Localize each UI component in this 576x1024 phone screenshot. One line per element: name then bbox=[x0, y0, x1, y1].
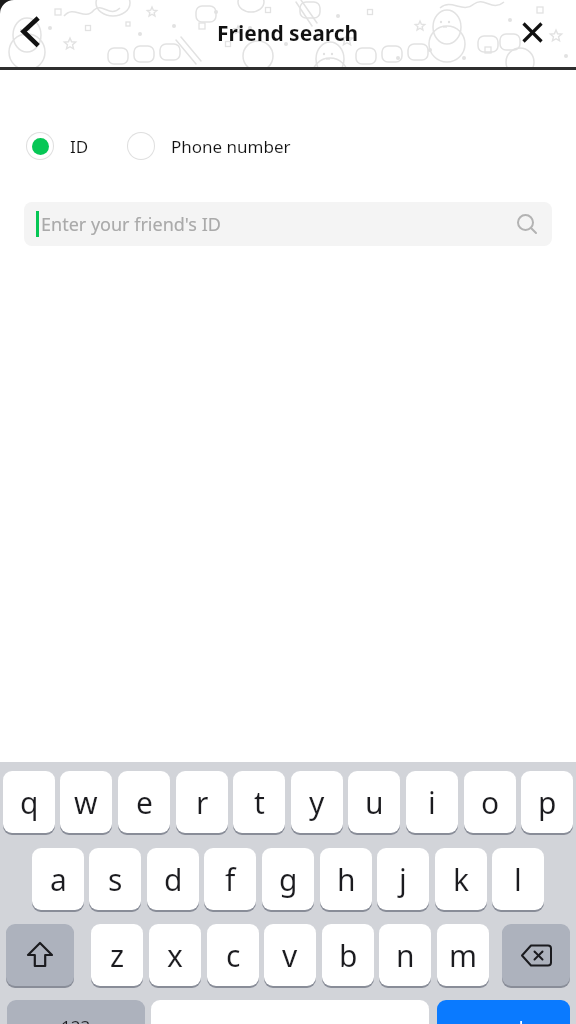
button[interactable]: Phone number bbox=[127, 132, 291, 160]
staticText: Phone number bbox=[171, 135, 291, 158]
staticText: f bbox=[225, 859, 236, 900]
button[interactable]: i bbox=[406, 771, 458, 833]
button[interactable]: search bbox=[437, 1000, 570, 1024]
staticText: t bbox=[254, 782, 265, 823]
button[interactable] bbox=[514, 14, 550, 50]
staticText: 123 bbox=[61, 1015, 91, 1024]
button[interactable]: o bbox=[464, 771, 516, 833]
staticText: d bbox=[164, 859, 183, 900]
button[interactable]: u bbox=[348, 771, 400, 833]
staticText: l bbox=[514, 859, 522, 900]
button[interactable]: v bbox=[264, 924, 316, 986]
button[interactable]: m bbox=[437, 924, 489, 986]
button[interactable]: j bbox=[377, 848, 429, 910]
button[interactable]: x bbox=[149, 924, 201, 986]
staticText: r bbox=[196, 782, 209, 823]
button[interactable]: d bbox=[147, 848, 199, 910]
staticText: x bbox=[167, 935, 183, 976]
button[interactable]: h bbox=[320, 848, 372, 910]
button[interactable]: p bbox=[521, 771, 573, 833]
staticText: s bbox=[108, 859, 123, 900]
staticText: m bbox=[449, 935, 478, 976]
button[interactable]: w bbox=[60, 771, 112, 833]
staticText: q bbox=[20, 782, 39, 823]
staticText: z bbox=[110, 935, 125, 976]
staticText: w bbox=[74, 782, 98, 823]
staticText: k bbox=[453, 859, 470, 900]
button[interactable]: g bbox=[262, 848, 314, 910]
button[interactable]: ID bbox=[26, 132, 89, 160]
staticText: h bbox=[337, 859, 356, 900]
staticText: Enter your friend's ID bbox=[41, 212, 221, 237]
staticText: v bbox=[282, 935, 298, 976]
staticText: g bbox=[279, 859, 298, 900]
button[interactable]: y bbox=[291, 771, 343, 833]
button[interactable]: t bbox=[233, 771, 285, 833]
staticText: p bbox=[538, 782, 557, 823]
staticText: ID bbox=[70, 135, 89, 158]
button[interactable] bbox=[10, 14, 50, 50]
button[interactable]: 123 bbox=[7, 1000, 145, 1024]
button[interactable]: z bbox=[91, 924, 143, 986]
button[interactable] bbox=[6, 924, 74, 986]
staticText: o bbox=[481, 782, 500, 823]
staticText: a bbox=[50, 859, 67, 900]
button[interactable]: l bbox=[492, 848, 544, 910]
button[interactable]: a bbox=[32, 848, 84, 910]
button[interactable]: s bbox=[89, 848, 141, 910]
staticText: y bbox=[309, 782, 325, 823]
button[interactable] bbox=[502, 924, 570, 986]
button[interactable]: Enter your friend's ID bbox=[24, 202, 552, 246]
button[interactable]: f bbox=[204, 848, 256, 910]
staticText: u bbox=[365, 782, 384, 823]
button[interactable]: q bbox=[3, 771, 55, 833]
staticText: e bbox=[136, 782, 153, 823]
button[interactable]: b bbox=[322, 924, 374, 986]
staticText: search bbox=[477, 1015, 530, 1024]
button[interactable]: k bbox=[435, 848, 487, 910]
staticText: c bbox=[226, 935, 241, 976]
button[interactable]: r bbox=[176, 771, 228, 833]
button[interactable]: n bbox=[379, 924, 431, 986]
staticText: j bbox=[399, 859, 407, 900]
staticText: Friend search bbox=[217, 19, 359, 48]
button[interactable]: c bbox=[207, 924, 259, 986]
button[interactable]: e bbox=[118, 771, 170, 833]
button[interactable]: space bbox=[151, 1000, 429, 1024]
staticText: b bbox=[339, 935, 358, 976]
staticText: n bbox=[396, 935, 415, 976]
staticText: i bbox=[428, 782, 436, 823]
